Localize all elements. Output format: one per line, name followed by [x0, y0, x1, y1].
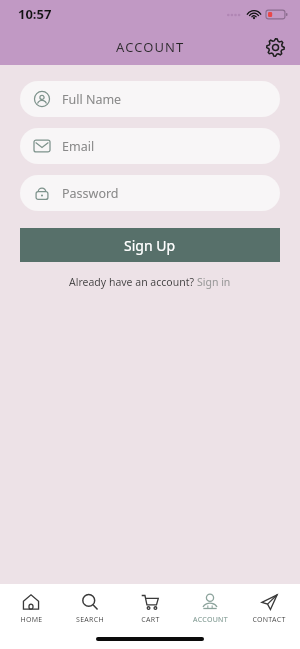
button[interactable]: Sign Up: [20, 228, 280, 262]
staticText: Sign Up: [124, 236, 176, 255]
staticText: Already have an account?: [69, 275, 197, 289]
staticText: ACCOUNT: [116, 38, 185, 56]
staticText: ACCOUNT: [193, 615, 228, 625]
staticText: CART: [141, 615, 160, 625]
button[interactable]: Settings: [260, 32, 290, 62]
staticText: HOME: [20, 615, 43, 625]
staticText: Full Name: [62, 91, 122, 108]
button[interactable]: Sign in: [197, 275, 231, 289]
staticText: Email: [62, 138, 95, 155]
staticText: Password: [62, 185, 119, 202]
staticText: 10:57: [18, 5, 52, 23]
button[interactable]: Full Name: [20, 81, 280, 117]
button[interactable]: HOME: [2, 591, 60, 627]
staticText: Sign in: [197, 275, 231, 289]
button[interactable]: Password: [20, 175, 280, 211]
button[interactable]: CONTACT: [240, 591, 298, 627]
staticText: CONTACT: [252, 615, 286, 625]
button[interactable]: SEARCH: [61, 591, 119, 627]
staticText: SEARCH: [76, 615, 104, 625]
button[interactable]: ACCOUNT: [181, 591, 239, 627]
button[interactable]: CART: [121, 591, 179, 627]
button[interactable]: Email: [20, 128, 280, 164]
